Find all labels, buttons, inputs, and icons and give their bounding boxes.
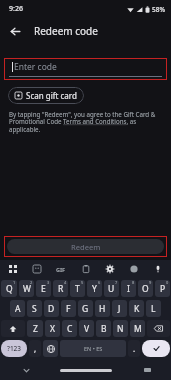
staticText: S [32, 303, 37, 315]
staticText: A [15, 303, 21, 315]
button[interactable]: J [112, 300, 127, 317]
button[interactable]: B [96, 320, 111, 337]
staticText: Q [6, 283, 13, 295]
button[interactable]: Theme [127, 262, 141, 276]
staticText: H [99, 303, 106, 315]
staticText: GIF [56, 266, 66, 273]
button[interactable]: C [62, 320, 77, 337]
button[interactable]: Scan gift card [8, 87, 84, 104]
staticText: V [84, 323, 90, 335]
button[interactable]: Apps [6, 262, 20, 276]
button[interactable]: Hide keyboard [20, 364, 32, 376]
staticText: X [50, 323, 55, 335]
staticText: 58% [152, 5, 165, 14]
staticText: 6 [98, 280, 101, 285]
staticText: 7 [115, 280, 118, 285]
button[interactable]: Y [87, 280, 102, 297]
staticText: . [133, 343, 136, 354]
button[interactable]: EN • ES [60, 340, 126, 357]
button[interactable]: D [44, 300, 59, 317]
button[interactable]: S [27, 300, 42, 317]
button[interactable]: O [138, 280, 153, 297]
button[interactable]: H [95, 300, 110, 317]
staticText: Z [33, 323, 38, 335]
staticText: O [142, 283, 149, 295]
staticText: M [134, 323, 142, 335]
button[interactable]: Shift [1, 320, 25, 337]
button[interactable]: Z [27, 320, 43, 337]
staticText: G [82, 303, 89, 315]
staticText: L [151, 303, 156, 315]
button[interactable]: . [128, 340, 140, 357]
button[interactable]: GIF [54, 262, 68, 276]
staticText: 9:26 [9, 4, 23, 14]
button[interactable]: Recent apps [141, 364, 153, 376]
staticText: J [118, 303, 121, 315]
staticText: , [34, 343, 37, 354]
button[interactable]: I [121, 280, 136, 297]
button[interactable]: R [53, 280, 68, 297]
button[interactable]: Enter [142, 340, 170, 357]
staticText: E [41, 283, 46, 295]
button[interactable]: X [45, 320, 60, 337]
staticText: ?123 [7, 344, 22, 353]
staticText: Enter code [14, 61, 57, 73]
staticText: By tapping "Redeem", you agree to the Gi… [9, 110, 162, 134]
staticText: C [67, 323, 73, 335]
button[interactable]: Clipboard [79, 262, 93, 276]
staticText: 3 [47, 280, 50, 285]
staticText: Redeem [71, 242, 101, 252]
staticText: 0 [166, 280, 169, 285]
staticText: 4 [64, 280, 67, 285]
button[interactable]: F [61, 300, 76, 317]
staticText: Scan gift card [26, 90, 77, 101]
staticText: K [134, 303, 140, 315]
button[interactable]: W [19, 280, 34, 297]
button[interactable]: M [130, 320, 145, 337]
button[interactable]: Redeem [4, 236, 167, 257]
staticText: N [117, 323, 124, 335]
button[interactable]: K [129, 300, 144, 317]
button[interactable]: Enter code [4, 58, 167, 80]
button[interactable]: G [78, 300, 93, 317]
button[interactable]: Back [4, 20, 26, 42]
staticText: B [101, 323, 107, 335]
button[interactable]: Change language [43, 340, 58, 357]
button[interactable]: A [10, 300, 25, 317]
staticText: 9 [149, 280, 152, 285]
staticText: Redeem code [34, 24, 98, 38]
staticText: EN • ES [84, 345, 103, 352]
staticText: D [48, 303, 55, 315]
button[interactable]: Stickers [30, 262, 44, 276]
button[interactable]: P [155, 280, 170, 297]
button[interactable]: Voice input [151, 262, 165, 276]
staticText: 1 [13, 280, 16, 285]
button[interactable]: E [36, 280, 51, 297]
staticText: P [160, 283, 166, 295]
button[interactable]: Settings [103, 262, 117, 276]
staticText: 5 [81, 280, 84, 285]
staticText: I [127, 283, 130, 295]
button[interactable]: Q [1, 280, 17, 297]
staticText: Y [92, 283, 97, 295]
button[interactable]: Backspace [147, 320, 170, 337]
staticText: U [108, 283, 115, 295]
staticText: T [75, 283, 80, 295]
staticText: R [58, 283, 64, 295]
staticText: W [23, 283, 31, 295]
button[interactable]: T [70, 280, 85, 297]
staticText: 8 [132, 280, 135, 285]
button[interactable]: ?123 [1, 340, 27, 357]
button[interactable]: U [104, 280, 119, 297]
button[interactable]: L [146, 300, 161, 317]
button[interactable]: V [79, 320, 94, 337]
staticText: 2 [30, 280, 33, 285]
button[interactable]: , [29, 340, 41, 357]
button[interactable]: N [113, 320, 128, 337]
staticText: F [66, 303, 71, 315]
